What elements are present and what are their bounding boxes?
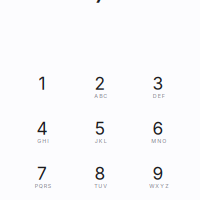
staticText: 9	[152, 163, 163, 184]
button[interactable]: 1	[13, 70, 71, 115]
button[interactable]: 4	[13, 115, 71, 160]
button[interactable]: 9	[129, 160, 187, 200]
staticText: DEF	[153, 93, 165, 99]
staticText: ABC	[94, 93, 107, 99]
staticText: MNO	[151, 138, 166, 144]
staticText: 2	[94, 73, 105, 94]
staticText: JKL	[95, 138, 107, 144]
staticText: GHI	[37, 138, 48, 144]
staticText: 3	[152, 73, 163, 94]
staticText: 6	[152, 118, 163, 139]
staticText: TUV	[94, 183, 107, 189]
button[interactable]: 3	[129, 70, 187, 115]
staticText: 7	[37, 163, 47, 184]
button[interactable]: 8	[71, 160, 129, 200]
staticText: 1	[38, 73, 45, 94]
staticText: PQRS	[35, 183, 51, 189]
button[interactable]: 6	[129, 115, 187, 160]
staticText: 5	[94, 118, 105, 139]
staticText: 7	[94, 0, 109, 9]
button[interactable]: 5	[71, 115, 129, 160]
staticText: 8	[94, 163, 105, 184]
button[interactable]: 2	[71, 70, 129, 115]
staticText: 4	[36, 118, 47, 139]
staticText: WXYZ	[149, 183, 168, 189]
button[interactable]: 7	[13, 160, 71, 200]
